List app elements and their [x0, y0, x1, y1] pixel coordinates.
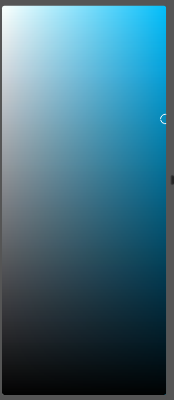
button[interactable]: Loading, please wait — [0, 0, 174, 400]
